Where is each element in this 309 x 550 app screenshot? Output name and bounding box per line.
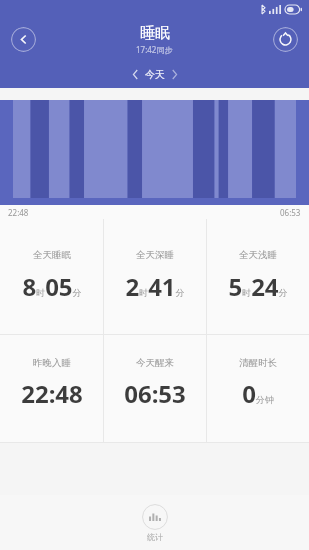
staticText: 5时24分 <box>228 270 288 303</box>
button[interactable]: 今天 <box>126 65 184 84</box>
button[interactable]: 统计 <box>134 500 176 546</box>
staticText: 2时41分 <box>125 270 185 303</box>
button[interactable]: Back <box>11 27 36 52</box>
staticText: 22:48 <box>8 207 29 218</box>
staticText: 22:48 <box>21 377 83 410</box>
button[interactable]: Sync <box>273 27 298 52</box>
button[interactable]: 全天睡眠 <box>0 219 103 334</box>
staticText: 06:53 <box>124 377 186 410</box>
staticText: 今天 <box>145 68 165 81</box>
button[interactable]: 清醒时长 <box>207 335 309 442</box>
staticText: 17:42同步 <box>136 44 173 55</box>
button[interactable]: 今天醒来 <box>104 335 206 442</box>
button[interactable]: 全天深睡 <box>104 219 206 334</box>
staticText: 06:53 <box>280 207 301 218</box>
staticText: 今天醒来 <box>136 357 174 369</box>
button[interactable]: 全天浅睡 <box>207 219 309 334</box>
staticText: 统计 <box>147 532 163 542</box>
staticText: 0分钟 <box>242 377 274 410</box>
staticText: 睡眠 <box>140 24 170 43</box>
button[interactable]: 昨晚入睡 <box>0 335 103 442</box>
staticText: 清醒时长 <box>239 357 277 369</box>
staticText: 全天深睡 <box>136 249 174 261</box>
staticText: 昨晚入睡 <box>33 357 71 369</box>
staticText: 全天睡眠 <box>33 249 71 261</box>
staticText: 全天浅睡 <box>239 249 277 261</box>
staticText: 8时05分 <box>22 270 82 303</box>
